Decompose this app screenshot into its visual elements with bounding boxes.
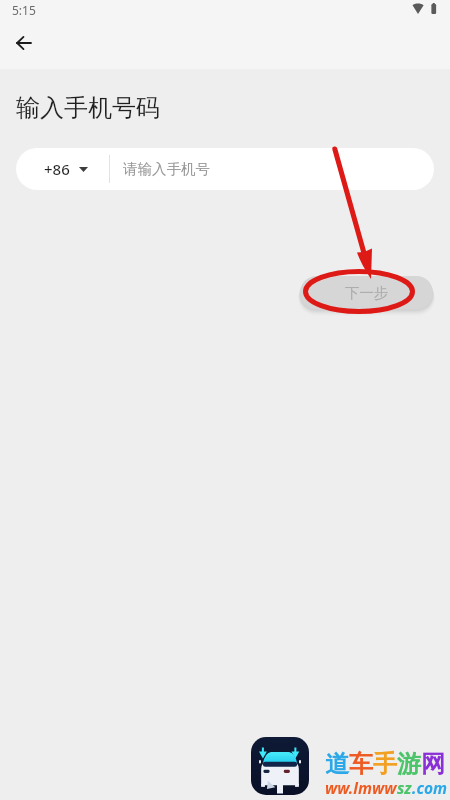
button[interactable]: +86 — [16, 148, 109, 190]
staticText: 手 — [373, 749, 397, 779]
staticText: sz — [397, 777, 412, 798]
staticText: 5:15 — [12, 2, 36, 18]
staticText: 道 — [325, 749, 349, 779]
button[interactable]: 请输入手机号 — [110, 148, 434, 190]
staticText: .com — [412, 777, 448, 798]
staticText: 请输入手机号 — [123, 160, 210, 178]
staticText: 网 — [421, 749, 445, 779]
button[interactable]: Back — [6, 25, 41, 61]
staticText: 游 — [397, 749, 421, 779]
staticText: 车 — [349, 749, 373, 779]
staticText: 下一步 — [345, 284, 389, 302]
button[interactable]: 下一步 — [300, 276, 433, 309]
staticText: +86 — [44, 159, 70, 179]
staticText: 输入手机号码 — [16, 93, 160, 123]
staticText: ww.lmww — [325, 777, 397, 798]
